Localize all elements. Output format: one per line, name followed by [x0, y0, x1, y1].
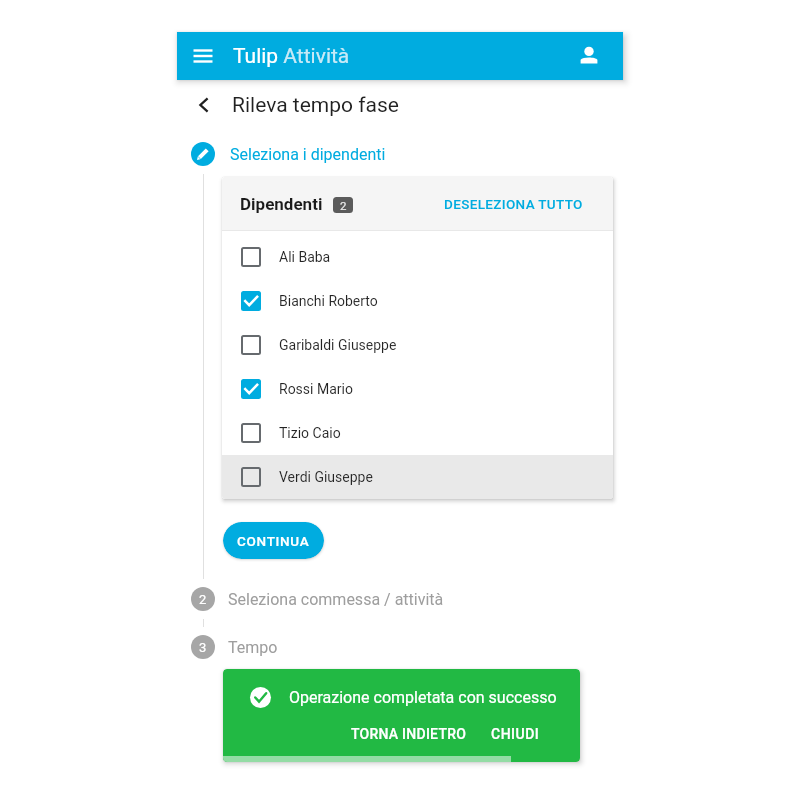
button[interactable]: Account	[570, 37, 608, 75]
staticText: Tizio Caio	[279, 425, 341, 441]
staticText: Verdi Giuseppe	[279, 469, 373, 485]
staticText: Seleziona i dipendenti	[230, 145, 386, 164]
staticText: Ali Baba	[279, 249, 331, 265]
button[interactable]: TORNA INDIETRO	[343, 721, 475, 747]
staticText: Rossi Mario	[279, 381, 353, 397]
staticText: Tulip Attività	[233, 44, 350, 69]
button[interactable]: 3	[191, 635, 265, 659]
button[interactable]: Garibaldi Giuseppe	[222, 323, 613, 367]
button[interactable]: Back	[186, 87, 222, 123]
staticText: CHIUDI	[491, 726, 540, 742]
button[interactable]: CONTINUA	[223, 522, 324, 559]
staticText: Rileva tempo fase	[232, 93, 399, 118]
staticText: 2	[340, 199, 347, 212]
button[interactable]: DESELEZIONA TUTTO	[430, 186, 613, 222]
staticText: 3	[199, 640, 207, 655]
staticText: CONTINUA	[237, 533, 310, 549]
button[interactable]: Bianchi Roberto	[222, 279, 613, 323]
staticText: DESELEZIONA TUTTO	[444, 196, 583, 212]
staticText: Operazione completata con successo	[289, 688, 557, 707]
staticText: Bianchi Roberto	[279, 293, 378, 309]
button[interactable]: 2	[191, 587, 431, 611]
button[interactable]: Tizio Caio	[222, 411, 613, 455]
button[interactable]: Rossi Mario	[222, 367, 613, 411]
staticText: 2	[199, 592, 207, 607]
staticText: Dipendenti	[240, 194, 323, 214]
button[interactable]: Ali Baba	[222, 235, 613, 279]
button[interactable]: Seleziona i dipendenti	[191, 142, 371, 166]
staticText: Garibaldi Giuseppe	[279, 337, 397, 353]
staticText: TORNA INDIETRO	[351, 726, 467, 742]
staticText: Tempo	[228, 638, 278, 657]
button[interactable]: Menu	[184, 37, 222, 75]
button[interactable]: CHIUDI	[483, 721, 548, 747]
button[interactable]: Verdi Giuseppe	[222, 455, 613, 499]
staticText: Seleziona commessa / attività	[228, 590, 444, 609]
